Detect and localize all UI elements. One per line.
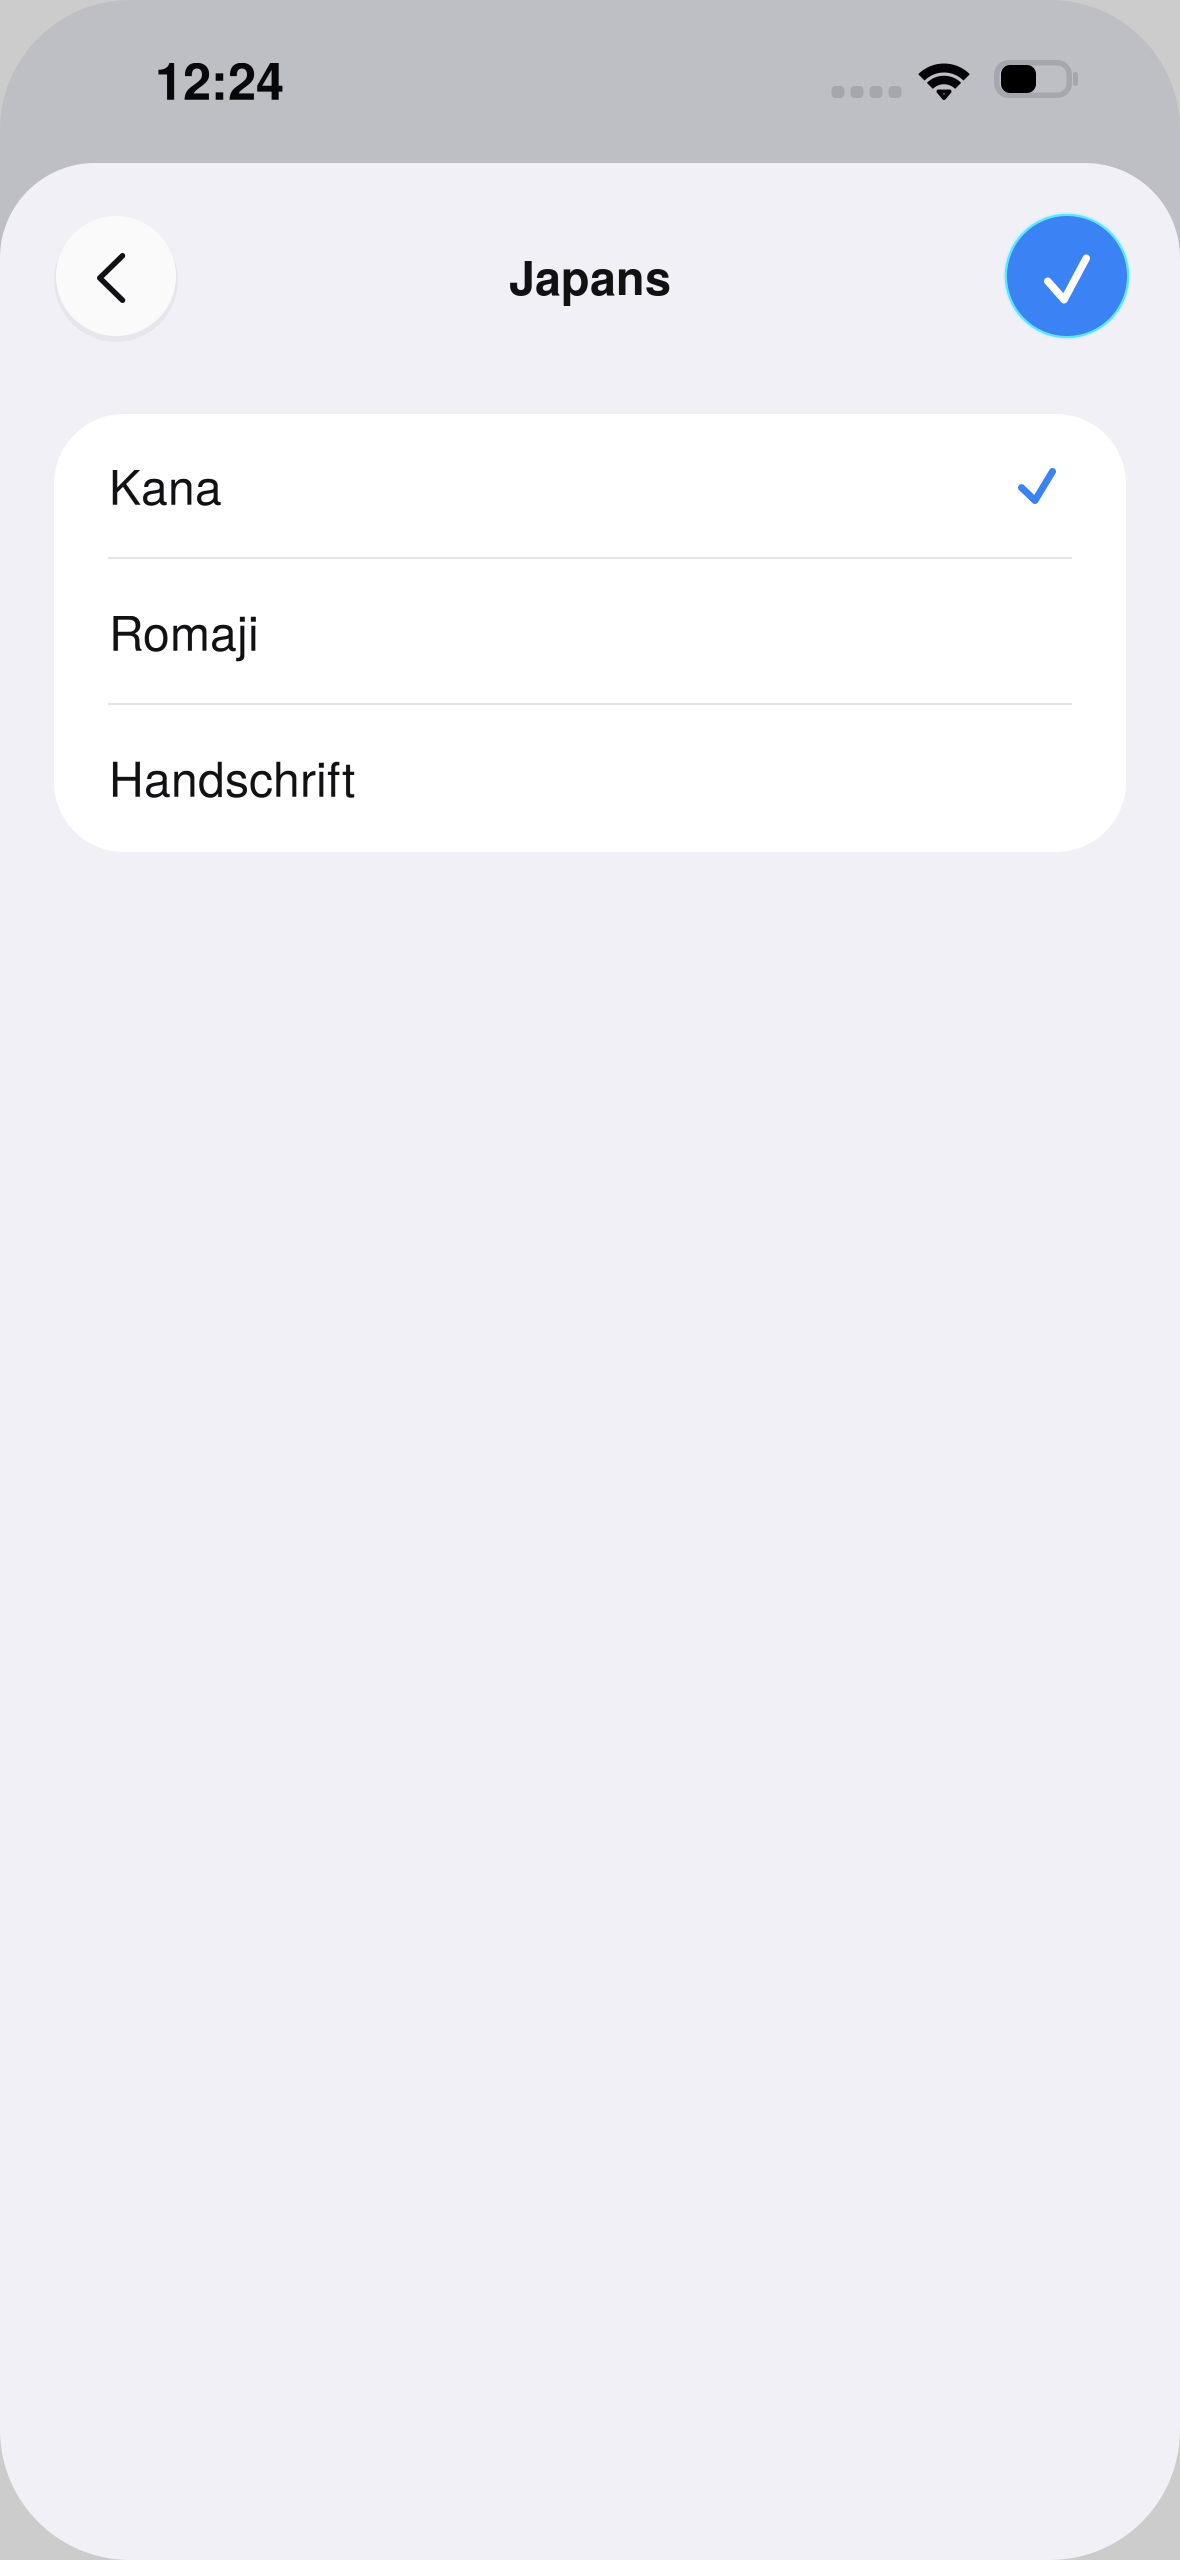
button[interactable]: Kana [54, 414, 1126, 560]
button[interactable]: Back [56, 213, 176, 339]
staticText: Kana [109, 450, 222, 518]
staticText: Japans [509, 243, 671, 309]
staticText: Handschrift [109, 742, 355, 810]
staticText: Romaji [109, 596, 259, 664]
button[interactable]: Romaji [54, 560, 1126, 706]
button[interactable]: Handschrift [54, 706, 1126, 852]
button[interactable]: Confirm [1001, 210, 1133, 342]
staticText: 12:24 [155, 43, 284, 115]
